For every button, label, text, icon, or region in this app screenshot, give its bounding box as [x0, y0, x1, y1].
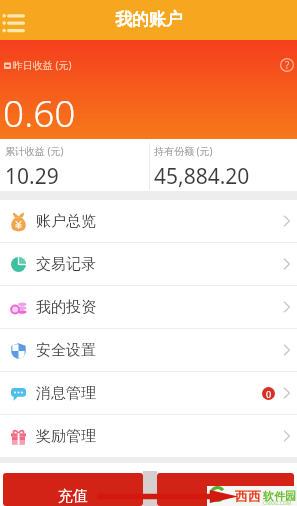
staticText: 累计收益 (元) — [5, 144, 64, 158]
button[interactable]: 消息管理 — [0, 372, 297, 414]
staticText: 0.60 — [3, 87, 76, 137]
staticText: 奖励管理 — [36, 427, 96, 446]
button[interactable]: 充值 — [3, 473, 143, 506]
staticText: 我的账户 — [115, 9, 183, 30]
staticText: 我的投资 — [36, 298, 96, 317]
staticText: 软件园 — [263, 489, 296, 503]
button[interactable]: 我的投资 — [0, 286, 297, 328]
staticText: 消息管理 — [36, 384, 96, 403]
staticText: 西西 — [235, 488, 261, 504]
button[interactable]: 提现 — [157, 473, 294, 506]
staticText: 持有份额 (元) — [154, 144, 213, 158]
staticText: 交易记录 — [36, 255, 96, 274]
staticText: 昨日收益 (元) — [13, 58, 72, 72]
button[interactable]: 交易记录 — [0, 243, 297, 285]
button[interactable]: Help — [280, 58, 294, 72]
staticText: 充值 — [58, 487, 88, 506]
staticText: 10.29 — [5, 162, 59, 191]
staticText: 45,884.20 — [154, 162, 250, 191]
button[interactable]: 账户总览 — [0, 200, 297, 242]
staticText: 0 — [266, 388, 272, 400]
staticText: 安全设置 — [36, 341, 96, 360]
staticText: 账户总览 — [36, 212, 96, 231]
button[interactable]: 安全设置 — [0, 329, 297, 371]
staticText: ? — [285, 58, 290, 72]
button[interactable]: Menu — [0, 5, 30, 35]
button[interactable]: 奖励管理 — [0, 415, 297, 457]
staticText: 提现 — [211, 487, 241, 506]
staticText: CNXXZ.COM — [263, 500, 292, 506]
